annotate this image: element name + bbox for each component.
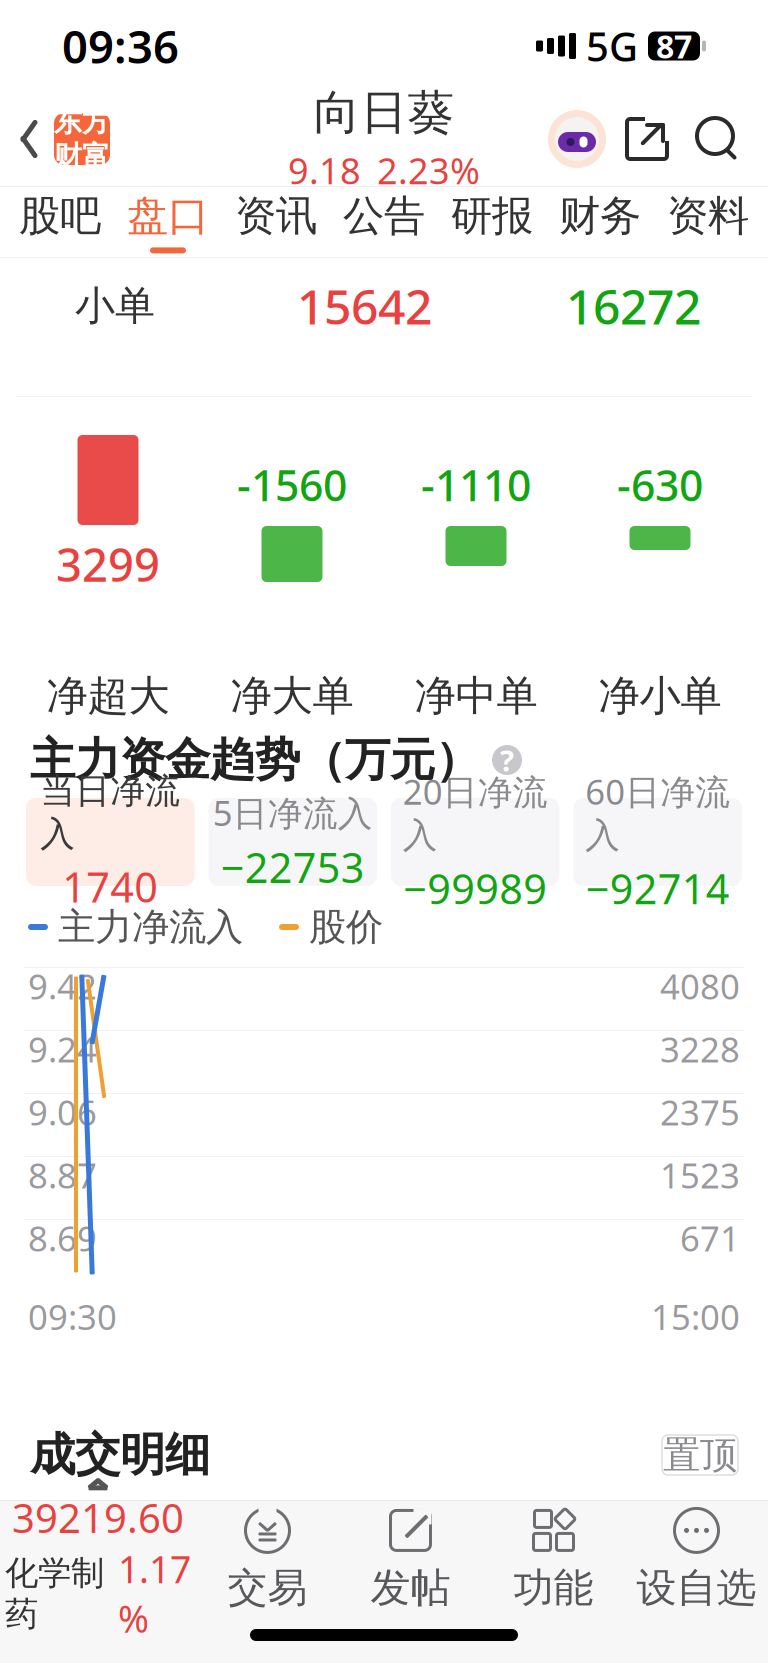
button[interactable]: 股吧: [6, 187, 114, 257]
staticText: 8.69: [28, 1215, 97, 1261]
staticText: 资讯: [235, 191, 317, 241]
staticText: 功能: [513, 1563, 593, 1612]
staticText: 小单: [75, 281, 155, 330]
staticText: 2.23%: [377, 146, 480, 194]
button[interactable]: 公告: [330, 187, 438, 257]
staticText: 当日净流入: [40, 770, 180, 855]
staticText: 5G: [586, 19, 638, 72]
button[interactable]: 5日净流入: [208, 798, 377, 886]
staticText: 发帖: [370, 1563, 450, 1612]
staticText: 15:00: [651, 1293, 740, 1339]
staticText: 股吧: [19, 191, 101, 241]
staticText: 资料: [667, 191, 749, 241]
staticText: 盘口: [127, 191, 209, 241]
button[interactable]: 资料: [654, 187, 762, 257]
staticText: 9.24: [28, 1026, 97, 1072]
button[interactable]: 返回: [0, 103, 110, 175]
staticText: 60日净流入: [585, 768, 730, 857]
staticText: -630: [617, 456, 703, 513]
staticText: ?: [500, 740, 514, 779]
staticText: 研报: [451, 191, 533, 241]
button[interactable]: 分享: [612, 107, 682, 171]
staticText: 1.17%: [118, 1544, 191, 1643]
button[interactable]: 交易: [196, 1501, 339, 1617]
staticText: 39219.60: [12, 1491, 184, 1544]
staticText: 设自选: [636, 1563, 756, 1612]
staticText: 成交明细: [30, 1427, 210, 1483]
button[interactable]: 当日净流入: [26, 798, 194, 886]
staticText: -1560: [237, 456, 347, 513]
staticText: 财务: [559, 191, 641, 241]
staticText: 9.42: [28, 963, 97, 1009]
staticText: 3299: [56, 534, 160, 594]
staticText: 8.87: [28, 1152, 97, 1198]
staticText: −92714: [586, 861, 730, 916]
button[interactable]: 置顶: [662, 1435, 738, 1475]
staticText: 09:36: [62, 16, 179, 76]
staticText: 1740: [62, 859, 158, 914]
button[interactable]: 设自选: [625, 1501, 768, 1617]
button[interactable]: 功能: [482, 1501, 625, 1617]
staticText: 09:30: [28, 1293, 117, 1339]
button[interactable]: 财务: [546, 187, 654, 257]
staticText: 公告: [343, 191, 425, 241]
button[interactable]: 20日净流入: [391, 798, 559, 886]
staticText: −22753: [221, 840, 365, 894]
staticText: 财富: [54, 139, 110, 173]
staticText: 主力净流入: [58, 904, 243, 950]
staticText: 2375: [660, 1089, 740, 1135]
staticText: 20日净流入: [403, 768, 548, 857]
staticText: 87: [656, 25, 692, 67]
staticText: 主力资金趋势（万元）: [30, 732, 480, 788]
staticText: 向日葵: [313, 84, 454, 141]
staticText: 5日净流入: [213, 789, 373, 835]
staticText: 净大单: [230, 671, 353, 721]
button[interactable]: 盘口: [114, 187, 222, 257]
staticText: 东方: [54, 105, 110, 139]
button[interactable]: 60日净流入: [573, 798, 742, 886]
button[interactable]: 说明: [492, 745, 522, 775]
staticText: 3228: [660, 1026, 740, 1072]
staticText: 16272: [566, 274, 701, 338]
staticText: 化学制药: [5, 1553, 104, 1634]
button[interactable]: 研报: [438, 187, 546, 257]
staticText: 交易: [227, 1563, 307, 1612]
staticText: 4080: [660, 963, 740, 1009]
button[interactable]: 资讯: [222, 187, 330, 257]
staticText: 股价: [309, 904, 383, 950]
staticText: 置顶: [663, 1432, 737, 1478]
staticText: -1110: [421, 456, 531, 513]
staticText: 9.06: [28, 1089, 97, 1135]
button[interactable]: AI 助手: [542, 104, 612, 174]
staticText: 净中单: [414, 671, 537, 721]
button[interactable]: 搜索: [682, 107, 752, 171]
staticText: −99989: [403, 861, 547, 916]
staticText: 15642: [297, 274, 432, 338]
staticText: 净小单: [598, 671, 721, 721]
staticText: 1523: [660, 1152, 740, 1198]
button[interactable]: 发帖: [339, 1501, 482, 1617]
staticText: 671: [680, 1215, 740, 1261]
staticText: 9.18: [288, 146, 361, 194]
staticText: 净超大: [46, 671, 169, 721]
